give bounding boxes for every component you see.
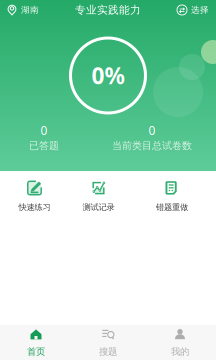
staticText: 0 — [148, 122, 155, 138]
staticText: 快速练习 — [18, 202, 50, 212]
staticText: 选择 — [191, 5, 209, 15]
staticText: 0% — [91, 60, 124, 91]
staticText: 专业实践能力 — [75, 3, 141, 17]
staticText: 0 — [40, 122, 47, 138]
button[interactable]: 错题重做 — [128, 171, 216, 222]
staticText: 我的 — [171, 346, 189, 358]
staticText: 已答题 — [29, 139, 59, 152]
staticText: 测试记录 — [82, 202, 114, 212]
button[interactable]: 湖南 — [0, 1, 45, 18]
staticText: 当前类目总试卷数 — [112, 139, 192, 152]
button[interactable]: 快速练习 — [0, 171, 69, 222]
button[interactable]: 测试记录 — [69, 171, 128, 222]
button[interactable]: 搜题 — [72, 325, 144, 360]
staticText: 搜题 — [99, 346, 117, 358]
staticText: 湖南 — [21, 5, 39, 15]
button[interactable]: 首页 — [0, 325, 72, 360]
button[interactable]: 选择 — [171, 2, 216, 18]
button[interactable]: 我的 — [144, 325, 216, 360]
staticText: 错题重做 — [156, 202, 188, 212]
staticText: 首页 — [27, 346, 45, 358]
